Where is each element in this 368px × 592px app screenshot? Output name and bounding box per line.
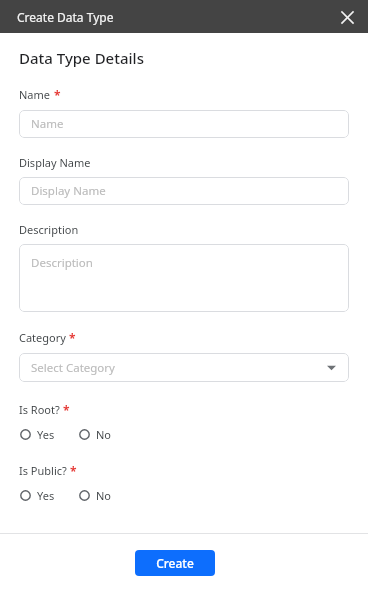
button[interactable]: Close [335,5,359,29]
staticText: Description [31,255,93,271]
staticText: Select Category [31,360,115,376]
staticText: Name [31,116,64,132]
staticText: Create Data Type [17,9,114,25]
staticText: Display Name [31,183,106,199]
staticText: * [69,330,76,346]
button[interactable]: Display Name [19,177,349,205]
staticText: * [70,463,77,479]
staticText: Yes [37,427,55,442]
button[interactable]: No [78,486,113,505]
button[interactable]: Create [135,550,215,576]
staticText: No [96,427,112,442]
button[interactable]: Name [19,110,349,138]
staticText: No [96,488,112,503]
staticText: Create [156,555,194,571]
staticText: * [63,402,70,418]
staticText: Data Type Details [19,48,144,68]
staticText: * [54,87,61,103]
staticText: Yes [37,488,55,503]
staticText: Name [19,87,51,102]
staticText: Description [19,222,79,237]
staticText: Is Public? [19,463,67,478]
staticText: Display Name [19,155,91,170]
staticText: Category [19,330,66,345]
button[interactable]: Select Category [19,353,349,382]
button[interactable]: Yes [19,425,56,444]
button[interactable]: Description [19,244,349,312]
button[interactable]: Yes [19,486,56,505]
button[interactable]: No [78,425,113,444]
staticText: Is Root? [19,402,60,417]
